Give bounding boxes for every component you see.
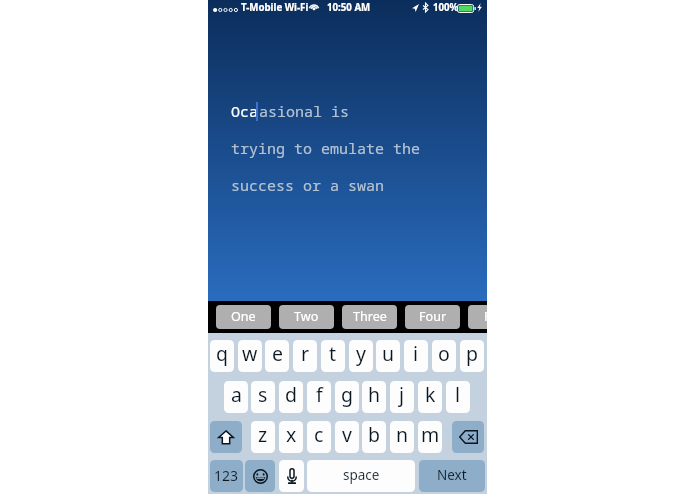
button[interactable]: 123 [210,460,243,492]
button[interactable]: k [418,381,442,413]
button[interactable]: Five [468,305,487,329]
staticText: r [301,340,310,367]
button[interactable]: v [335,421,359,453]
staticText: s [258,381,268,408]
staticText: 10:50 AM [327,1,371,14]
button[interactable]: u [376,340,400,372]
button[interactable]: g [335,381,359,413]
staticText: Four [419,308,447,325]
button[interactable]: Three [342,305,397,329]
staticText: y [356,340,366,367]
button[interactable]: Two [279,305,334,329]
button[interactable]: p [460,340,484,372]
staticText: Five [484,308,487,325]
staticText: f [316,381,323,408]
staticText: a [231,381,242,408]
staticText: k [425,381,436,408]
staticText: Next [437,466,467,484]
button[interactable]: j [390,381,414,413]
staticText: 123 [214,466,239,485]
staticText: u [382,340,395,367]
button[interactable]: i [404,340,428,372]
staticText: o [438,340,450,367]
button[interactable]: Shift [210,421,242,453]
button[interactable]: One [216,305,271,329]
button[interactable]: t [321,340,345,372]
button[interactable]: a [224,381,248,413]
staticText: x [286,421,297,448]
staticText: t [329,340,337,367]
staticText: n [396,421,409,448]
staticText: v [342,421,352,448]
button[interactable]: e [265,340,289,372]
button[interactable]: r [293,340,317,372]
button[interactable]: q [210,340,234,372]
button[interactable]: c [307,421,331,453]
staticText: 100% [433,1,459,14]
staticText: e [272,340,283,367]
staticText: d [285,381,297,408]
staticText: l [455,381,461,408]
button[interactable]: Emoji [245,460,275,492]
button[interactable]: z [251,421,275,453]
button[interactable]: h [362,381,386,413]
button[interactable]: b [362,421,386,453]
staticText: h [368,381,381,408]
button[interactable]: Voice input [279,460,304,492]
staticText: p [466,340,478,367]
button[interactable]: s [251,381,275,413]
staticText: Oca [231,101,259,121]
button[interactable]: Backspace [452,421,484,453]
button[interactable]: m [418,421,442,453]
button[interactable]: f [307,381,331,413]
staticText: g [341,381,353,408]
button[interactable]: Next [419,460,485,492]
button[interactable]: x [279,421,303,453]
button[interactable]: o [432,340,456,372]
staticText: T-Mobile Wi-Fi [241,1,309,14]
staticText: trying to emulate the [231,138,421,158]
staticText: b [368,421,380,448]
button[interactable]: n [390,421,414,453]
staticText: One [231,308,256,325]
staticText: c [314,421,324,448]
staticText: m [421,421,440,448]
staticText: space [343,466,380,484]
button[interactable]: Four [405,305,460,329]
button[interactable]: d [279,381,303,413]
button[interactable]: y [349,340,373,372]
staticText: asional is [259,101,350,121]
staticText: z [258,421,268,448]
button[interactable]: l [446,381,470,413]
staticText: success or a swan [231,175,385,195]
button[interactable]: w [238,340,262,372]
staticText: w [242,340,258,367]
button[interactable]: space [307,460,415,492]
staticText: j [399,381,405,408]
staticText: Three [353,308,387,325]
staticText: i [413,340,419,367]
staticText: q [216,340,228,367]
staticText: Two [294,308,319,325]
